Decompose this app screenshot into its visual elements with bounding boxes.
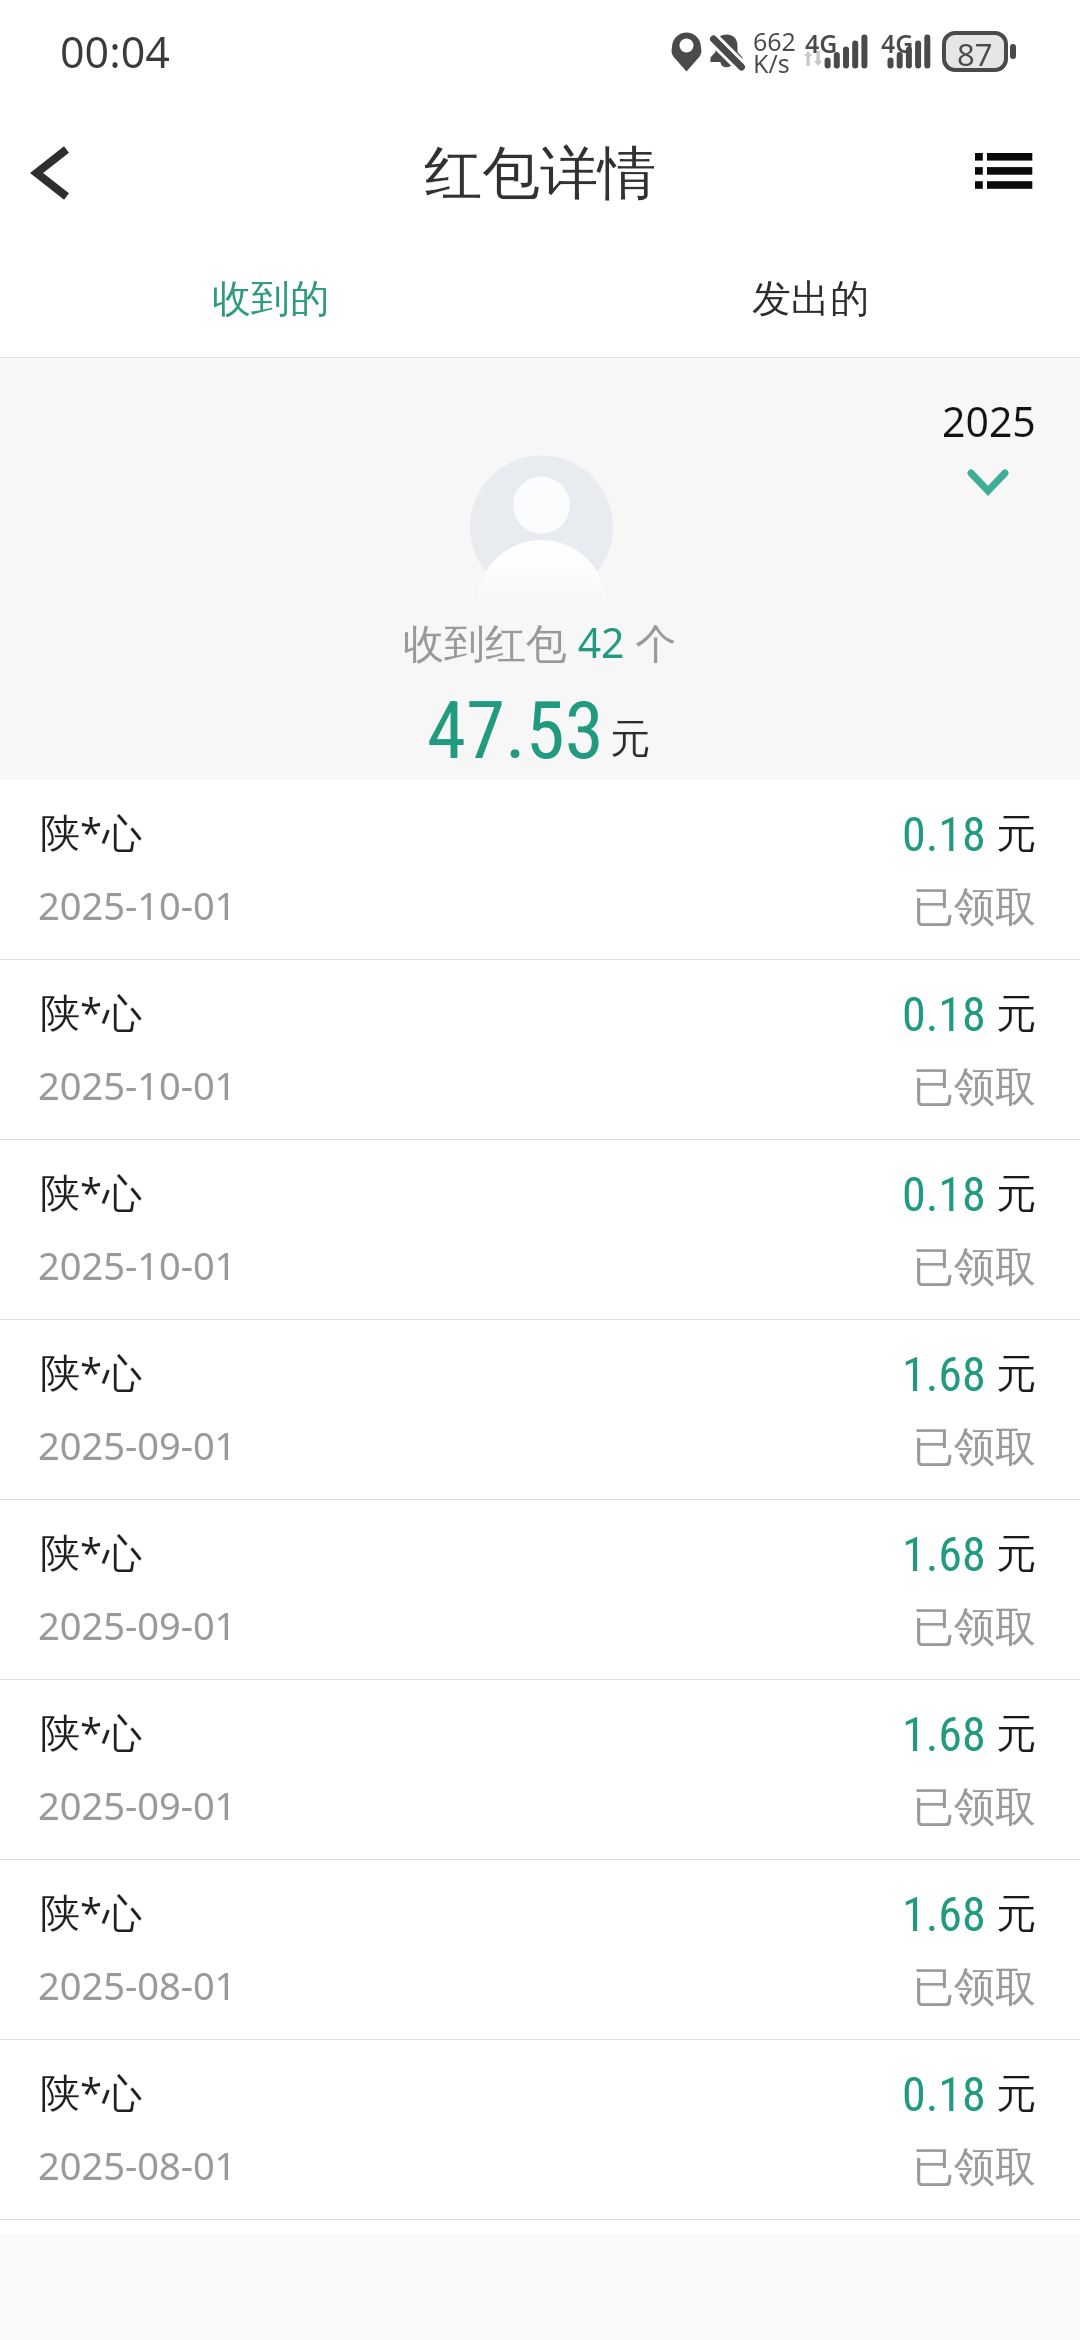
staticText: 元 — [610, 713, 650, 763]
staticText: 2025-09-01 — [38, 1599, 237, 1651]
staticText: 已领取 — [913, 1242, 1036, 1294]
staticText: 元 — [996, 1888, 1036, 1938]
staticText: 发出的 — [752, 274, 869, 323]
staticText: 已领取 — [913, 1962, 1036, 2014]
staticText: 陕*心 — [40, 984, 143, 1039]
staticText: 元 — [996, 1348, 1036, 1398]
staticText: 元 — [996, 1168, 1036, 1218]
staticText: 87 — [957, 33, 993, 75]
staticText: 元 — [996, 1708, 1036, 1758]
staticText: 已领取 — [913, 1062, 1036, 1114]
staticText: 已领取 — [913, 2142, 1036, 2194]
staticText: 2025-10-01 — [38, 879, 237, 931]
staticText: 收到的 — [212, 274, 329, 323]
staticText: 元 — [996, 988, 1036, 1038]
staticText: 2025 — [942, 393, 1036, 449]
staticText: 4G — [881, 26, 914, 60]
staticText: 2025-08-01 — [38, 1959, 237, 2011]
staticText: 47.53 — [427, 685, 604, 778]
staticText: 1.68 — [902, 1886, 986, 1942]
staticText: 元 — [996, 1528, 1036, 1578]
staticText: 陕*心 — [40, 1884, 143, 1939]
button[interactable]: 陕*心 — [0, 1500, 1080, 1680]
staticText: 元 — [996, 2068, 1036, 2118]
staticText: 2025-09-01 — [38, 1779, 237, 1831]
staticText: 陕*心 — [40, 2064, 143, 2119]
staticText: 2025-08-01 — [38, 2139, 237, 2191]
staticText: 0.18 — [902, 2066, 986, 2122]
staticText: 陕*心 — [40, 1344, 143, 1399]
staticText: 陕*心 — [40, 1164, 143, 1219]
button[interactable]: Back — [0, 128, 104, 224]
staticText: 2025-09-01 — [38, 1419, 237, 1471]
staticText: 已领取 — [913, 1422, 1036, 1474]
staticText: 已领取 — [913, 1782, 1036, 1834]
staticText: 4G — [805, 26, 838, 60]
button[interactable]: 陕*心 — [0, 1860, 1080, 2040]
button[interactable]: 陕*心 — [0, 1320, 1080, 1500]
button[interactable]: 陕*心 — [0, 780, 1080, 960]
staticText: K/s — [753, 46, 790, 80]
staticText: 2025-10-01 — [38, 1239, 237, 1291]
staticText: 红包详情 — [424, 137, 656, 210]
staticText: 0.18 — [902, 1166, 986, 1222]
staticText: 1.68 — [902, 1346, 986, 1402]
staticText: 662 — [753, 24, 796, 58]
staticText: 00:04 — [60, 22, 170, 81]
button[interactable]: 2025 — [910, 380, 1065, 510]
staticText: 陕*心 — [40, 1524, 143, 1579]
staticText: 陕*心 — [40, 1704, 143, 1759]
staticText: 1.68 — [902, 1526, 986, 1582]
staticText: 1.68 — [902, 1706, 986, 1762]
button[interactable]: 收到的 — [0, 240, 540, 357]
staticText: 收到红包 42 个 — [403, 614, 677, 670]
button[interactable]: 发出的 — [540, 240, 1080, 357]
staticText: 已领取 — [913, 1602, 1036, 1654]
staticText: 2025-10-01 — [38, 1059, 237, 1111]
button[interactable]: 陕*心 — [0, 2040, 1080, 2220]
staticText: 已领取 — [913, 882, 1036, 934]
button[interactable]: 陕*心 — [0, 1680, 1080, 1860]
button[interactable]: 陕*心 — [0, 960, 1080, 1140]
staticText: 0.18 — [902, 806, 986, 862]
button[interactable]: List options — [968, 130, 1062, 220]
button[interactable]: 陕*心 — [0, 1140, 1080, 1320]
staticText: 元 — [996, 808, 1036, 858]
staticText: 陕*心 — [40, 804, 143, 859]
staticText: 0.18 — [902, 986, 986, 1042]
